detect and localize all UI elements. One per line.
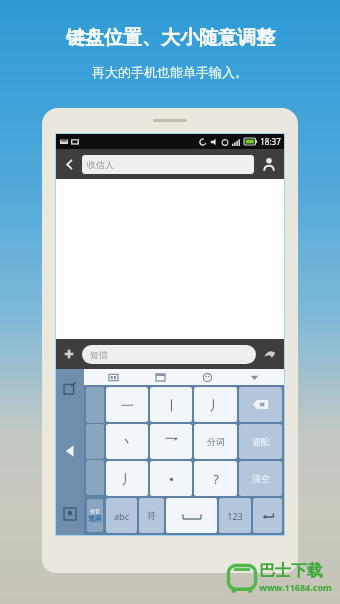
button[interactable]: Space [166,498,217,533]
button[interactable]: Enter [253,498,282,533]
staticText: 丨 [165,397,178,413]
button[interactable]: Collapse keyboard [59,440,81,462]
button[interactable]: Send [256,339,284,369]
button[interactable]: 拼音 [87,499,103,532]
staticText: 笔画 [88,514,102,523]
button[interactable]: down [231,369,278,385]
staticText: 收信人 [87,159,114,170]
staticText: 短信 [90,349,108,360]
staticText: 清空 [252,473,270,484]
staticText: 丶 [121,434,134,450]
button[interactable]: cal [137,369,184,385]
button[interactable]: 123 [219,498,251,533]
button[interactable]: 丿 [194,387,237,422]
staticText: 123 [227,510,243,522]
staticText: 18:37 [260,136,281,147]
staticText: ? [213,470,219,488]
button[interactable]: Back [56,149,82,179]
button[interactable]: Add attachment [56,339,82,369]
button[interactable]: 一 [106,387,148,422]
staticText: 符 [147,510,156,521]
button[interactable]: 丨 [150,387,192,422]
button[interactable]: 乛 [150,424,192,459]
button[interactable]: 收信人 [82,155,254,174]
button[interactable]: grid [90,369,137,385]
button[interactable]: ? [194,461,237,496]
button[interactable]: abc [106,498,137,533]
staticText: 键盘位置、大小随意调整 [66,26,275,50]
button[interactable]: 通配 [239,424,282,459]
staticText: www.11684.com [259,581,332,593]
button[interactable]: 丶 [106,424,148,459]
button[interactable]: Backspace [239,387,282,422]
button[interactable]: Voice input [61,505,79,523]
staticText: 一 [121,397,134,413]
staticText: 乛 [165,434,178,450]
staticText: 分词 [207,436,225,447]
staticText: 通配 [252,436,270,447]
staticText: 再大的手机也能单手输入。 [92,64,248,80]
button[interactable]: emoji [184,369,231,385]
staticText: 丿 [121,471,134,487]
staticText: 丿 [209,397,222,413]
button[interactable]: 符 [139,498,164,533]
button[interactable]: • [150,461,192,496]
button[interactable]: 丿 [106,461,148,496]
button[interactable]: 短信 [82,345,256,364]
button[interactable]: 分词 [194,424,237,459]
staticText: • [169,470,174,488]
staticText: abc [114,510,129,522]
staticText: 拼音 [90,508,100,514]
button[interactable]: 清空 [239,461,282,496]
button[interactable]: Resize keyboard [61,379,79,397]
button[interactable]: Contacts [254,149,284,179]
staticText: 巴士下载 [259,561,323,581]
